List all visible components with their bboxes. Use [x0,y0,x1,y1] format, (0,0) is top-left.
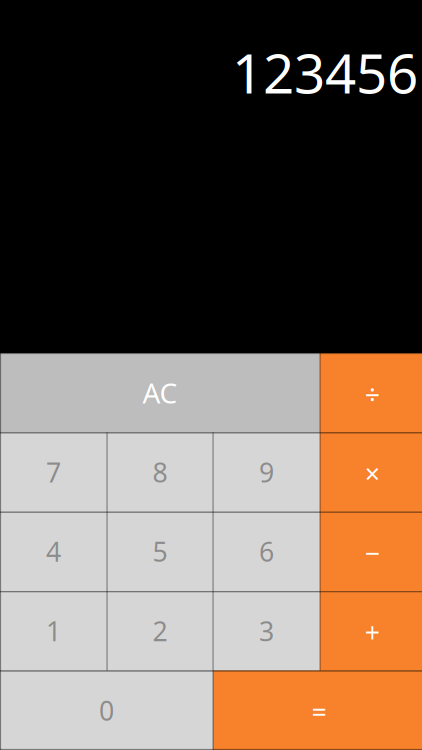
staticText: + [365,614,380,650]
button[interactable]: 4 [0,512,107,591]
button[interactable]: Add [320,591,422,671]
staticText: ÷ [365,376,380,412]
staticText: AC [142,374,177,411]
button[interactable]: 7 [0,432,107,512]
staticText: 7 [46,454,61,490]
button[interactable]: 8 [107,432,213,512]
button[interactable]: All clear [0,353,320,432]
staticText: 3 [259,613,274,649]
staticText: − [365,535,380,570]
staticText: 6 [259,534,274,569]
staticText: 8 [152,454,167,490]
button[interactable]: 2 [107,591,213,671]
button[interactable]: 0 [0,671,213,750]
staticText: 5 [152,534,167,569]
button[interactable]: 5 [107,512,213,591]
button[interactable]: 9 [213,432,320,512]
button[interactable]: 3 [213,591,320,671]
staticText: 2 [152,613,167,649]
button[interactable]: Divide [320,353,422,432]
staticText: 4 [46,534,61,569]
button[interactable]: 1 [0,591,107,671]
button[interactable]: 6 [213,512,320,591]
button[interactable]: Subtract [320,512,422,591]
button[interactable]: Multiply [320,432,422,512]
staticText: 123456 [232,36,418,109]
button[interactable]: Equals [213,671,422,750]
staticText: × [365,456,380,491]
staticText: 9 [259,454,274,490]
staticText: 1 [46,613,61,649]
staticText: 0 [99,693,114,728]
staticText: = [312,694,327,729]
